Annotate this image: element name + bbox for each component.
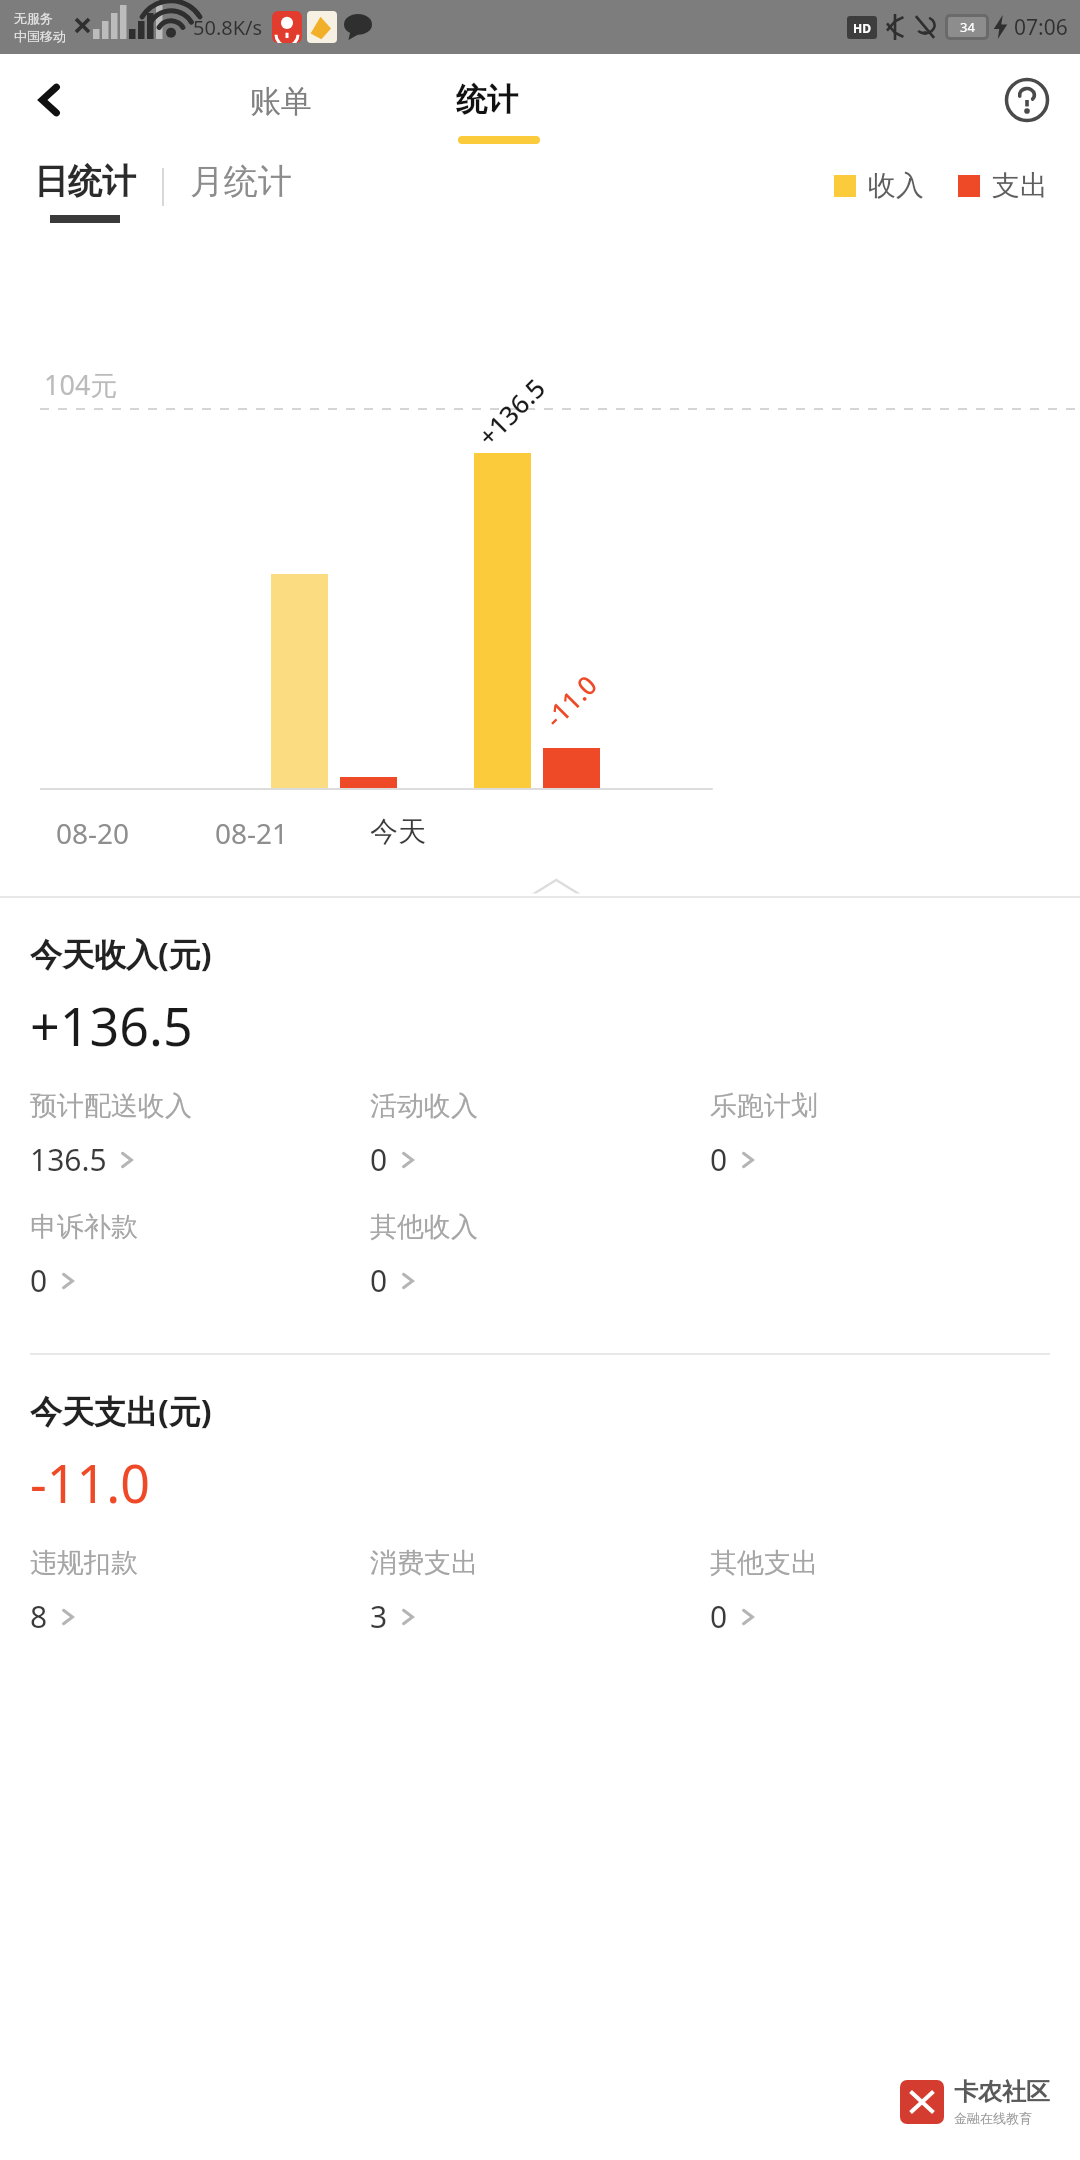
staticText: 卡农社区 <box>954 2077 1050 2107</box>
staticText: +136.5 <box>30 990 193 1061</box>
button[interactable]: 违规扣款 <box>30 1542 370 1641</box>
staticText: 账单 <box>250 82 312 121</box>
button[interactable]: 活动收入 <box>370 1085 710 1184</box>
button[interactable]: 其他支出 <box>710 1542 1050 1641</box>
staticText: 今天支出(元) <box>30 1389 212 1433</box>
staticText: 统计 <box>456 80 518 119</box>
staticText: -11.0 <box>537 667 604 734</box>
staticText: 0 <box>710 1596 728 1637</box>
staticText: 活动收入 <box>370 1089 478 1123</box>
staticText: 8 <box>30 1596 48 1637</box>
staticText: 3 <box>370 1596 388 1637</box>
staticText: 支出 <box>992 168 1048 203</box>
staticText: 104元 <box>44 366 118 403</box>
staticText: +136.5 <box>470 370 552 453</box>
staticText: 今天 <box>370 814 426 849</box>
staticText: 34 <box>960 18 975 36</box>
button[interactable]: 消费支出 <box>370 1542 710 1641</box>
staticText: 申诉补款 <box>30 1210 138 1244</box>
staticText: 违规扣款 <box>30 1546 138 1580</box>
staticText: 月统计 <box>190 160 292 203</box>
staticText: 其他支出 <box>710 1546 818 1580</box>
button[interactable]: 帮助 <box>996 69 1058 131</box>
staticText: -11.0 <box>30 1447 150 1518</box>
button[interactable]: 其他收入 <box>370 1206 710 1305</box>
staticText: 08-21 <box>215 814 289 852</box>
staticText: 今天收入(元) <box>30 932 212 976</box>
button[interactable]: 申诉补款 <box>30 1206 370 1305</box>
staticText: 08-20 <box>56 814 130 852</box>
staticText: 0 <box>30 1260 48 1301</box>
button[interactable]: 返回 <box>20 70 80 130</box>
staticText: 中国移动 <box>14 28 66 44</box>
button[interactable]: 乐跑计划 <box>710 1085 1050 1184</box>
staticText: 136.5 <box>30 1139 107 1180</box>
button[interactable]: 日统计 <box>30 160 140 223</box>
staticText: 0 <box>370 1260 388 1301</box>
staticText: 收入 <box>868 168 924 203</box>
staticText: HD <box>853 20 871 36</box>
staticText: 07:06 <box>1014 13 1068 42</box>
staticText: 无服务 <box>14 10 53 26</box>
staticText: 消费支出 <box>370 1546 478 1580</box>
staticText: 50.8K/s <box>193 14 263 41</box>
staticText: 乐跑计划 <box>710 1089 818 1123</box>
staticText: 0 <box>710 1139 728 1180</box>
button[interactable]: 预计配送收入 <box>30 1085 370 1184</box>
button[interactable]: 账单 <box>230 70 332 133</box>
staticText: 金融在线教育 <box>954 2110 1032 2126</box>
staticText: 其他收入 <box>370 1210 478 1244</box>
button[interactable]: 统计 <box>436 68 538 131</box>
staticText: 日统计 <box>34 160 136 203</box>
staticText: 预计配送收入 <box>30 1089 192 1123</box>
staticText: 0 <box>370 1139 388 1180</box>
button[interactable]: 月统计 <box>186 160 296 203</box>
